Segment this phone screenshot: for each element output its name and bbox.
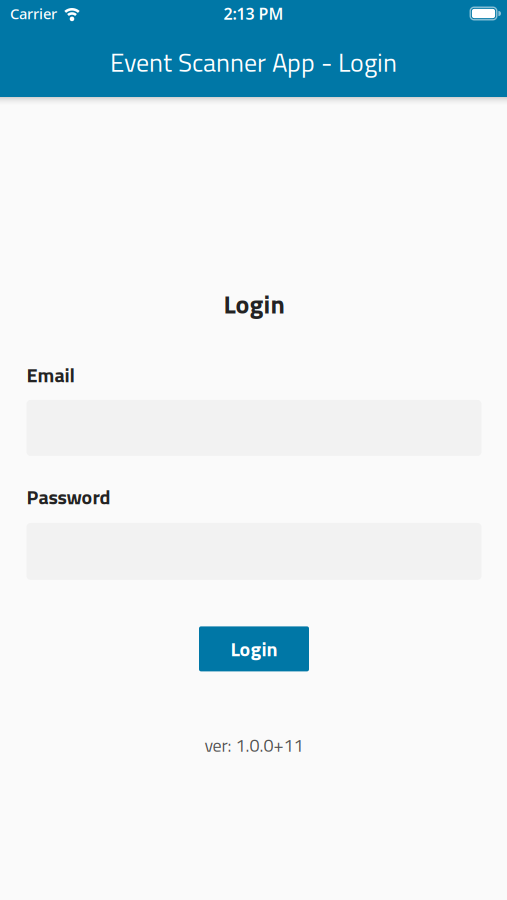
staticText: Login (223, 284, 284, 323)
staticText: Carrier (10, 4, 57, 23)
staticText: ver: 1.0.0+11 (204, 731, 303, 759)
staticText: Password (26, 481, 110, 512)
button[interactable]: Login (199, 626, 309, 671)
staticText: Login (230, 634, 277, 664)
staticText: Email (26, 359, 74, 390)
staticText: Event Scanner App - Login (110, 42, 397, 82)
staticText: 2:13 PM (223, 3, 283, 24)
